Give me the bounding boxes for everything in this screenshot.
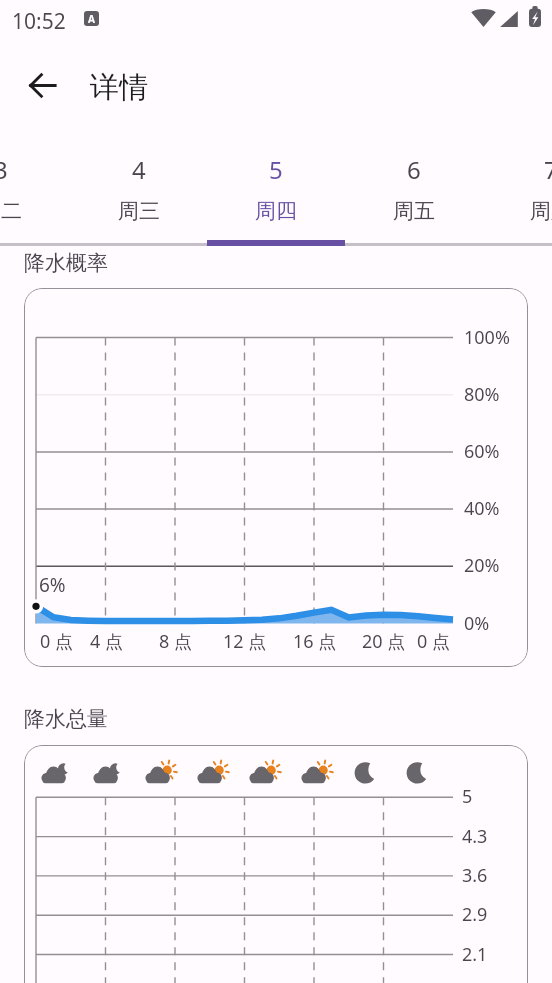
staticText: 100% <box>464 325 510 350</box>
staticText: 5 <box>269 153 283 186</box>
staticText: 10:52 <box>12 7 66 36</box>
staticText: 0% <box>464 611 490 636</box>
staticText: 7 <box>544 153 552 186</box>
staticText: 4.3 <box>462 824 488 849</box>
staticText: 6% <box>39 572 66 598</box>
staticText: A <box>88 12 95 26</box>
staticText: 80% <box>464 382 500 407</box>
staticText: 20 点 <box>362 629 406 654</box>
button[interactable]: 4 <box>70 140 208 246</box>
staticText: 周二 <box>0 198 22 224</box>
staticText: 2.1 <box>462 942 488 967</box>
staticText: 5 <box>462 784 473 809</box>
button[interactable]: 6 <box>345 140 483 246</box>
staticText: 降水概率 <box>24 250 108 276</box>
staticText: 降水总量 <box>24 706 108 732</box>
button[interactable]: 5 <box>207 140 345 246</box>
staticText: 4 点 <box>90 629 123 654</box>
staticText: 16 点 <box>293 629 337 654</box>
button[interactable]: 7 <box>482 140 552 246</box>
button[interactable]: Back <box>18 61 66 109</box>
staticText: 3.6 <box>462 863 488 888</box>
staticText: 20% <box>464 553 500 578</box>
staticText: 周三 <box>118 198 160 224</box>
staticText: 8 点 <box>159 629 192 654</box>
staticText: 60% <box>464 439 500 464</box>
staticText: 0 点 <box>40 629 73 654</box>
staticText: 2.9 <box>462 902 488 927</box>
staticText: 12 点 <box>223 629 267 654</box>
staticText: 6 <box>407 153 421 186</box>
staticText: 周四 <box>255 198 297 224</box>
staticText: 周五 <box>393 198 435 224</box>
staticText: 0 点 <box>417 629 450 654</box>
button[interactable]: 3 <box>0 140 70 246</box>
staticText: 40% <box>464 496 500 521</box>
staticText: 4 <box>132 153 146 186</box>
staticText: 3 <box>0 153 8 186</box>
staticText: 周六 <box>530 198 552 224</box>
staticText: 详情 <box>90 69 148 106</box>
